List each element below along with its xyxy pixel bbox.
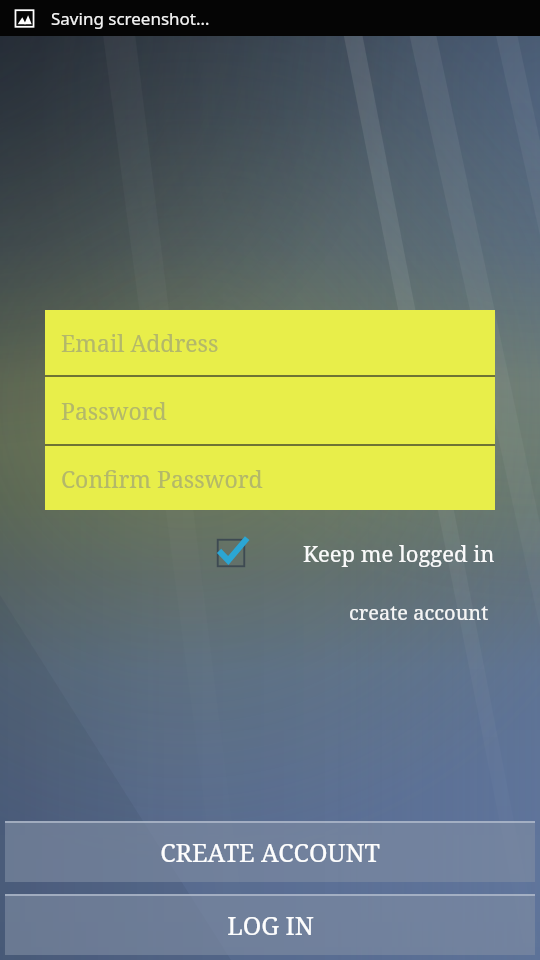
button[interactable]: Email Address (45, 310, 495, 375)
staticText: Password (61, 395, 167, 426)
staticText: LOG IN (227, 908, 314, 942)
staticText: Saving screenshot… (51, 7, 210, 30)
staticText: Email Address (61, 327, 219, 358)
staticText: CREATE ACCOUNT (160, 835, 380, 869)
button[interactable]: Keep me logged in checkbox (209, 531, 253, 575)
button[interactable]: CREATE ACCOUNT (5, 821, 535, 882)
button[interactable]: LOG IN (5, 894, 535, 955)
staticText: Confirm Password (61, 463, 263, 494)
button[interactable]: create account (343, 593, 495, 632)
staticText: create account (349, 599, 489, 626)
staticText: Keep me logged in (303, 538, 495, 568)
button[interactable]: Confirm Password (45, 446, 495, 510)
button[interactable]: Password (45, 377, 495, 444)
